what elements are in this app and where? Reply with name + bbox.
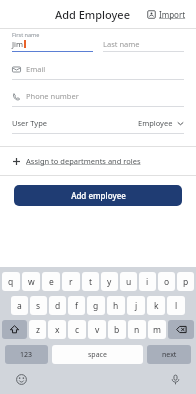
button[interactable]: m <box>148 320 166 339</box>
button[interactable]: Voice input <box>166 370 184 388</box>
button[interactable]: c <box>68 320 86 339</box>
button[interactable]: t <box>82 272 99 291</box>
staticText: space <box>88 350 107 360</box>
staticText: g <box>93 300 99 312</box>
button[interactable]: 123 <box>5 345 48 364</box>
button[interactable]: n <box>128 320 146 339</box>
staticText: Add employee <box>71 190 126 201</box>
staticText: y <box>107 276 112 288</box>
staticText: k <box>154 300 159 312</box>
staticText: Assign to departments and roles <box>26 156 141 166</box>
button[interactable]: space <box>52 345 143 364</box>
staticText: User Type <box>12 118 48 128</box>
button[interactable]: a <box>11 296 28 315</box>
staticText: h <box>113 300 119 312</box>
staticText: m <box>153 324 161 336</box>
button[interactable]: Last name <box>103 39 184 52</box>
button[interactable]: s <box>30 296 47 315</box>
button[interactable]: Key <box>168 320 194 339</box>
button[interactable]: Key <box>2 320 27 339</box>
button[interactable]: x <box>48 320 66 339</box>
button[interactable]: q <box>2 272 20 291</box>
button[interactable]: h <box>107 296 125 315</box>
staticText: j <box>135 300 138 312</box>
button[interactable]: Emoji <box>12 370 30 388</box>
staticText: p <box>183 276 189 288</box>
button[interactable]: First name <box>12 31 93 52</box>
button[interactable]: o <box>158 272 175 291</box>
button[interactable]: k <box>147 296 165 315</box>
staticText: w <box>28 276 35 288</box>
staticText: v <box>95 324 100 336</box>
staticText: d <box>55 300 61 312</box>
button[interactable]: Phone number <box>12 91 184 107</box>
staticText: a <box>17 300 22 312</box>
staticText: Employee <box>138 118 173 128</box>
staticText: Last name <box>103 39 140 49</box>
staticText: Email <box>26 64 46 74</box>
button[interactable]: e <box>42 272 60 291</box>
staticText: o <box>164 276 170 288</box>
staticText: Add Employee <box>55 7 130 22</box>
button[interactable]: l <box>167 296 185 315</box>
button[interactable]: User Type <box>12 118 184 134</box>
staticText: Jim <box>12 39 23 49</box>
button[interactable]: z <box>29 320 46 339</box>
button[interactable]: g <box>87 296 105 315</box>
button[interactable]: Import <box>145 6 188 23</box>
button[interactable]: p <box>177 272 194 291</box>
button[interactable]: Assign to departments and roles <box>0 147 196 175</box>
staticText: Phone number <box>26 91 79 101</box>
button[interactable]: y <box>101 272 118 291</box>
staticText: l <box>175 300 178 312</box>
button[interactable]: next <box>147 345 191 364</box>
staticText: b <box>114 324 120 336</box>
staticText: next <box>162 350 177 360</box>
staticText: 123 <box>20 350 33 360</box>
staticText: x <box>55 324 60 336</box>
button[interactable]: r <box>62 272 80 291</box>
staticText: First name <box>12 31 40 38</box>
staticText: f <box>75 300 78 312</box>
button[interactable]: f <box>68 296 85 315</box>
staticText: e <box>49 276 54 288</box>
button[interactable]: Add employee <box>14 185 182 206</box>
staticText: r <box>69 276 73 288</box>
button[interactable]: w <box>22 272 40 291</box>
button[interactable]: d <box>49 296 66 315</box>
staticText: c <box>75 324 80 336</box>
staticText: i <box>146 276 149 288</box>
button[interactable]: Email <box>12 64 184 80</box>
button[interactable]: j <box>127 296 145 315</box>
button[interactable]: u <box>120 272 137 291</box>
staticText: t <box>89 276 93 288</box>
staticText: Import <box>159 9 186 20</box>
staticText: u <box>126 276 132 288</box>
staticText: n <box>134 324 140 336</box>
button[interactable]: v <box>88 320 106 339</box>
staticText: s <box>36 300 41 312</box>
button[interactable]: b <box>108 320 126 339</box>
staticText: q <box>8 276 14 288</box>
staticText: z <box>36 324 40 336</box>
button[interactable]: i <box>139 272 156 291</box>
